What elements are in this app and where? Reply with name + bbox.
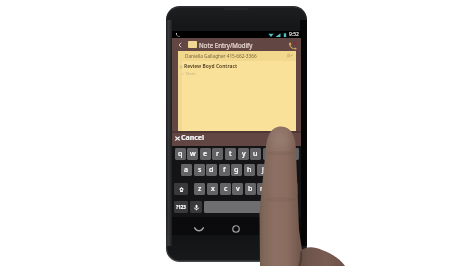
button[interactable]: y xyxy=(238,148,249,160)
button[interactable]: n xyxy=(257,183,268,195)
staticText: Review Boyd Contract xyxy=(184,63,238,70)
button[interactable]: o xyxy=(275,148,286,160)
button[interactable]: r xyxy=(212,148,223,160)
staticText: v xyxy=(236,184,240,194)
button[interactable]: e xyxy=(200,148,211,160)
other: Call contact xyxy=(288,40,298,50)
button[interactable]: j xyxy=(257,164,268,176)
button[interactable]: a xyxy=(181,164,192,176)
button[interactable]: Back xyxy=(172,38,301,51)
button[interactable]: ?123 xyxy=(174,201,188,213)
button[interactable]: Cancel xyxy=(172,131,301,146)
staticText: q xyxy=(178,149,183,159)
staticText: Note Entry/Modify xyxy=(199,41,253,49)
button[interactable]: l xyxy=(282,164,293,176)
staticText: x xyxy=(211,184,215,194)
button[interactable]: f xyxy=(219,164,230,176)
staticText: g xyxy=(234,165,239,175)
button[interactable]: w xyxy=(187,148,198,160)
staticText: b xyxy=(248,184,253,194)
staticText: p xyxy=(291,149,296,159)
staticText: Note xyxy=(186,71,196,77)
button[interactable]: Delete xyxy=(284,183,298,195)
staticText: 9:52 xyxy=(289,31,299,38)
button[interactable]: t xyxy=(225,148,236,160)
button[interactable]: s xyxy=(194,164,205,176)
staticText: s xyxy=(198,165,202,175)
staticText: h xyxy=(247,165,252,175)
staticText: n xyxy=(260,184,265,194)
button[interactable]: g xyxy=(231,164,242,176)
button[interactable]: v xyxy=(232,183,243,195)
staticText: t xyxy=(229,149,232,159)
staticText: a xyxy=(184,165,189,175)
staticText: r xyxy=(216,149,219,159)
button[interactable]: p xyxy=(288,148,299,160)
staticText: z xyxy=(198,184,202,194)
button[interactable]: Hide keyboard xyxy=(193,223,205,235)
staticText: w xyxy=(190,149,196,159)
staticText: c xyxy=(224,184,228,194)
button[interactable]: d xyxy=(206,164,217,176)
button[interactable]: u xyxy=(250,148,261,160)
other: Back xyxy=(177,42,183,48)
button[interactable]: q xyxy=(175,148,186,160)
button[interactable]: Home xyxy=(230,223,242,235)
button[interactable]: c xyxy=(220,183,231,195)
button[interactable]: z xyxy=(194,183,205,195)
staticText: Daniella Gallagher 415-662-3366 xyxy=(185,53,257,59)
button[interactable]: Shift xyxy=(174,183,188,195)
button[interactable]: Space xyxy=(204,201,266,213)
button[interactable]: i xyxy=(263,148,274,160)
staticText: j xyxy=(262,165,264,175)
staticText: u xyxy=(253,149,258,159)
staticText: f xyxy=(223,165,226,175)
button[interactable]: b xyxy=(245,183,256,195)
staticText: ?123 xyxy=(176,204,186,210)
button[interactable]: Voice input xyxy=(190,201,202,213)
staticText: e xyxy=(203,149,208,159)
button[interactable]: x xyxy=(207,183,218,195)
staticText: Cancel xyxy=(181,133,205,143)
staticText: y xyxy=(242,149,246,159)
button[interactable]: h xyxy=(244,164,255,176)
other: Add contact xyxy=(286,53,293,60)
staticText: o xyxy=(278,149,283,159)
staticText: d xyxy=(209,165,214,175)
